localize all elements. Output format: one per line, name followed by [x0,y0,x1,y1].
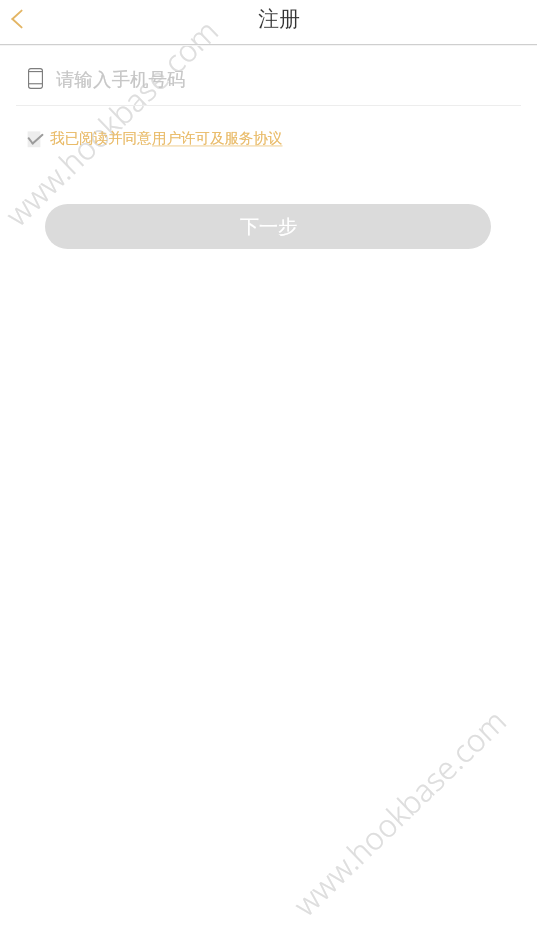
staticText: 下一步 [240,215,297,239]
staticText: 请输入手机号码 [56,68,186,91]
staticText: 我已阅读并同意 [50,129,152,147]
staticText: 用户许可及服务协议 [152,129,283,147]
staticText: 注册 [258,6,300,32]
staticText: www.hookbase.com [284,699,515,925]
button[interactable]: 我已阅读并同意 [23,125,283,147]
button[interactable]: 下一步 [45,204,491,249]
button[interactable]: Back [0,0,36,44]
staticText: www.hookbase.com [0,9,227,235]
